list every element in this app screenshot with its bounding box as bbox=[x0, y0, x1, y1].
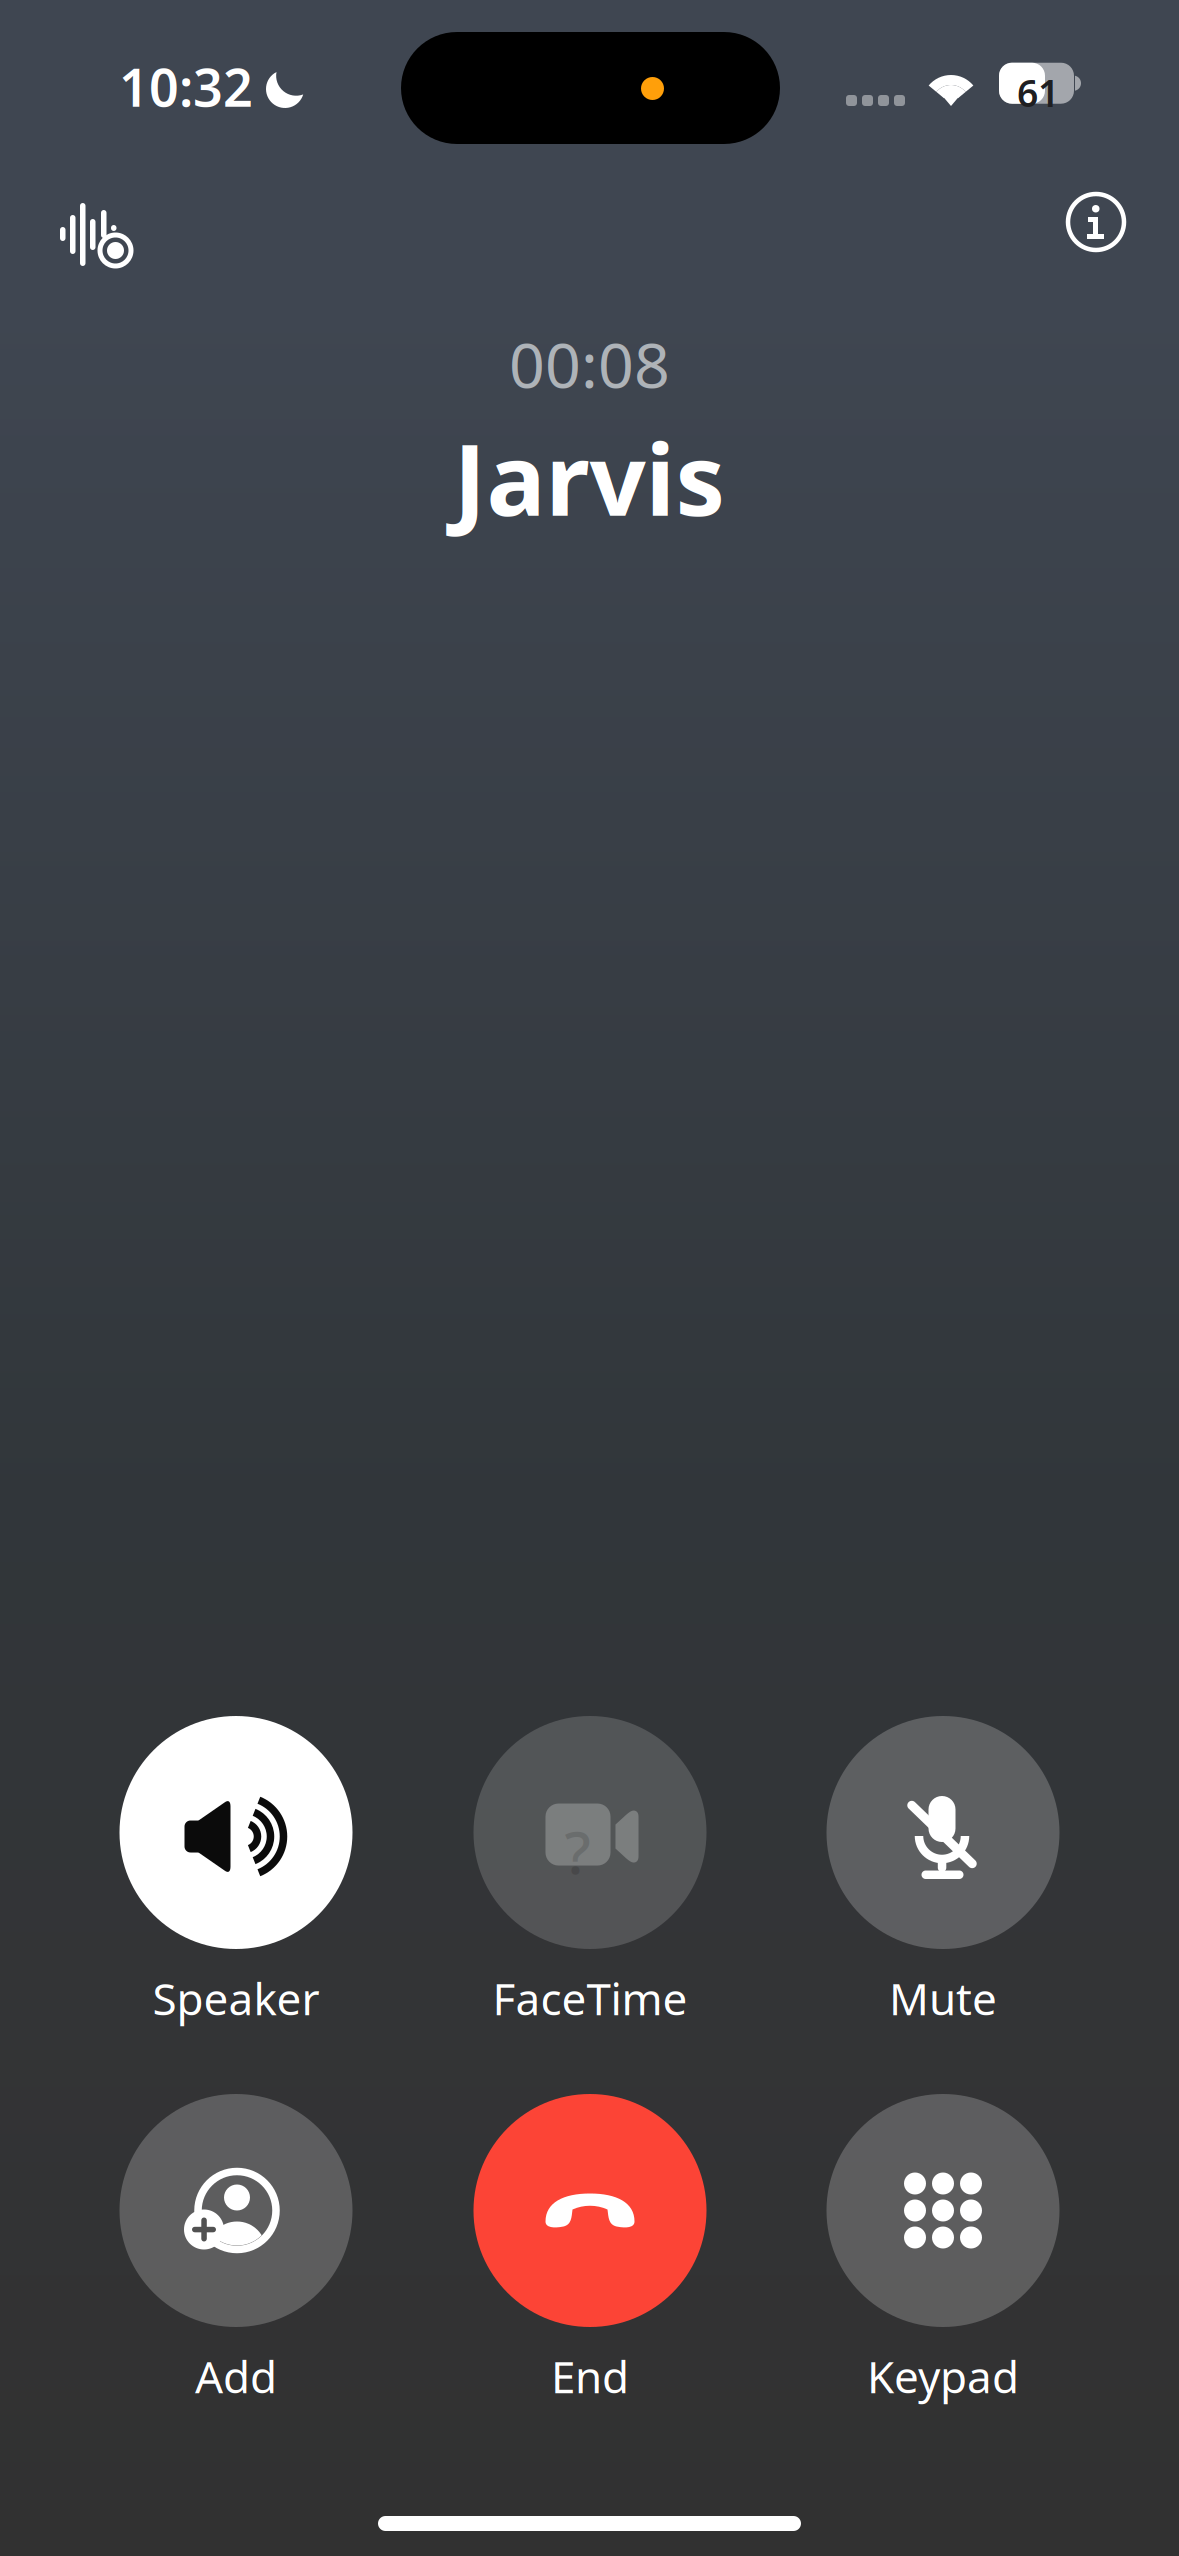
staticText: Speaker bbox=[152, 1969, 319, 2027]
button[interactable]: Call details bbox=[1067, 193, 1125, 251]
button[interactable]: Call recording bbox=[60, 203, 131, 266]
staticText: ? bbox=[564, 1812, 590, 1890]
button[interactable]: End bbox=[425, 2094, 755, 2405]
staticText: End bbox=[551, 2347, 629, 2405]
staticText: Add bbox=[195, 2347, 277, 2405]
button[interactable]: Mute bbox=[778, 1716, 1108, 2027]
staticText: FaceTime bbox=[492, 1969, 687, 2027]
button[interactable]: ? bbox=[425, 1716, 755, 2027]
staticText: 00:08 bbox=[509, 322, 670, 405]
staticText: Keypad bbox=[867, 2347, 1019, 2405]
staticText: Jarvis bbox=[453, 412, 725, 543]
button[interactable]: Add bbox=[71, 2094, 401, 2405]
staticText: Mute bbox=[889, 1969, 997, 2027]
staticText: 10:32 bbox=[119, 52, 253, 121]
button[interactable]: Speaker bbox=[71, 1716, 401, 2027]
staticText: 61 bbox=[1017, 68, 1059, 117]
button[interactable]: Keypad bbox=[778, 2094, 1108, 2405]
